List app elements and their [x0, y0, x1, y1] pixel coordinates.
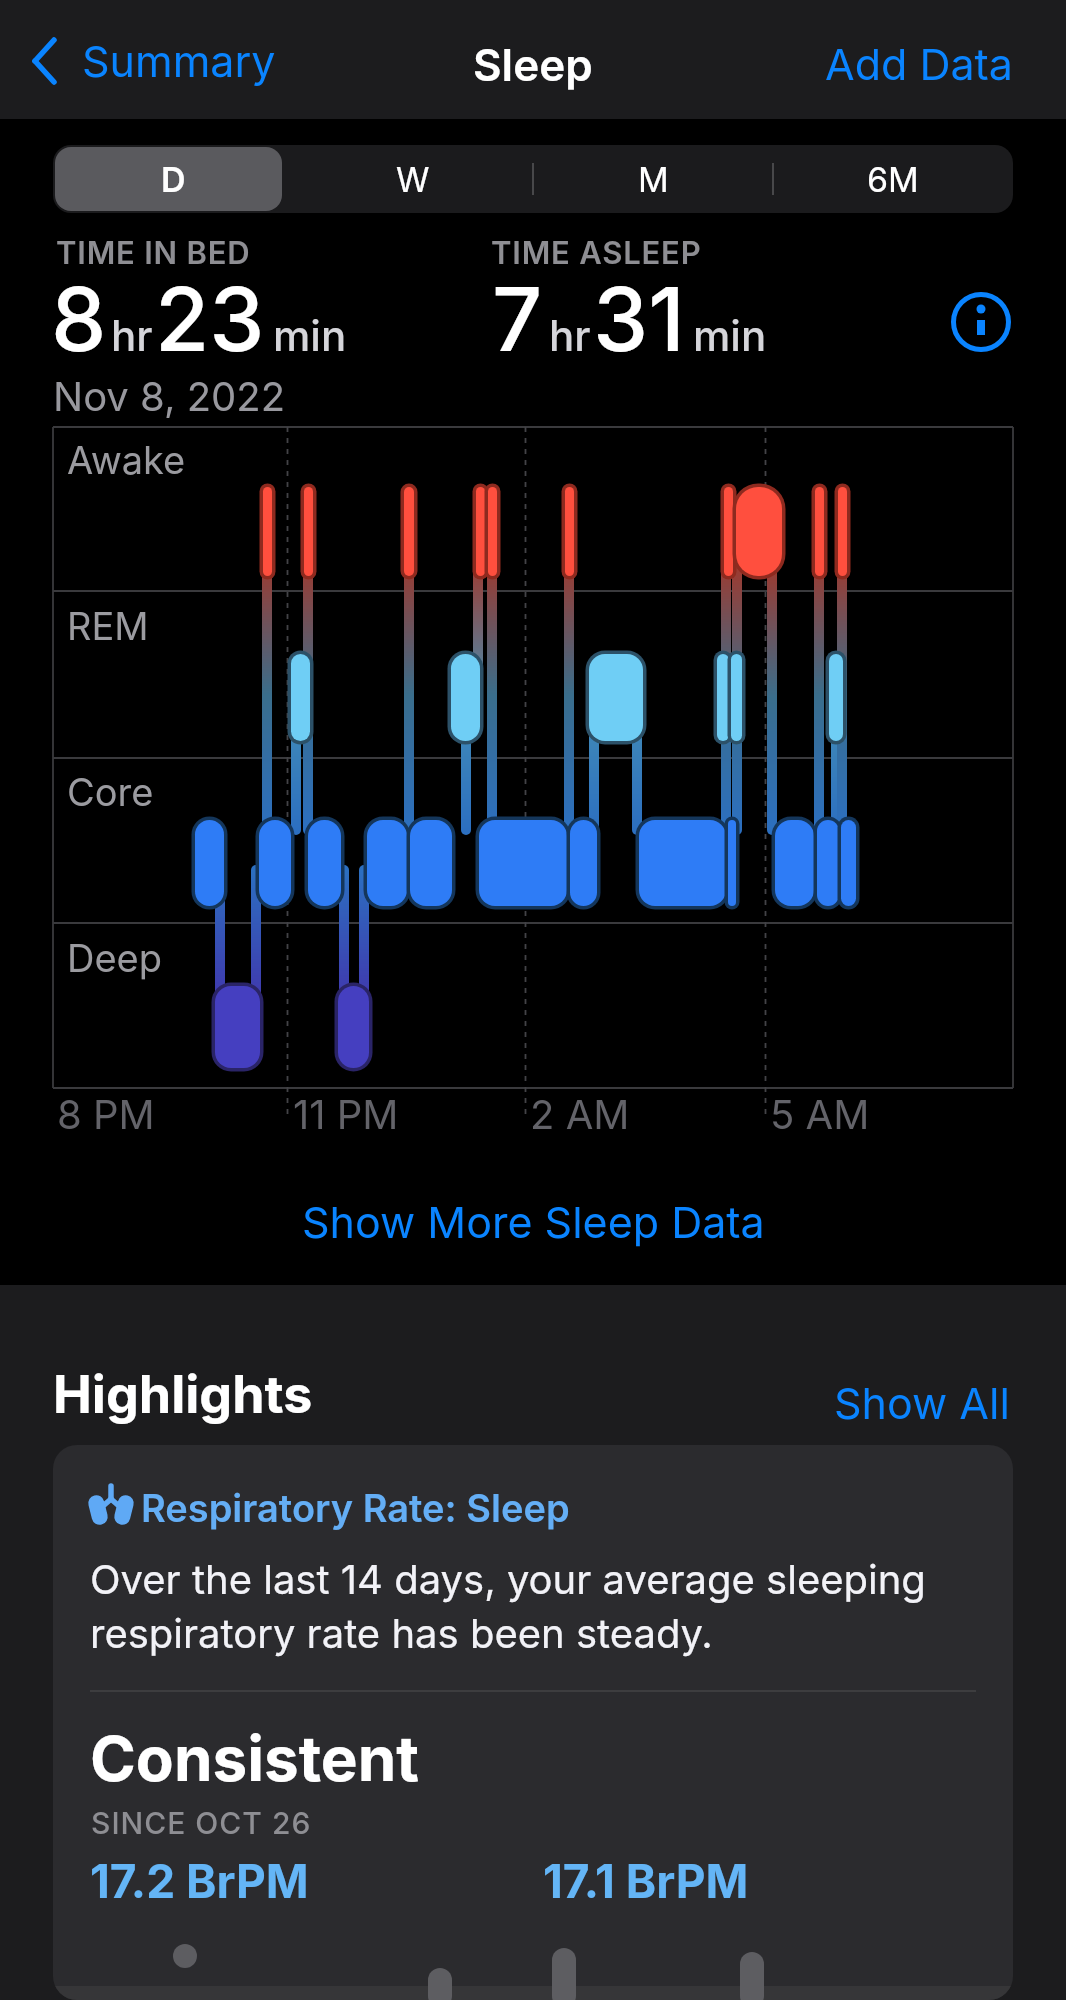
- staticText: 7: [492, 266, 543, 372]
- staticText: Deep: [67, 935, 162, 981]
- button[interactable]: [949, 290, 1013, 354]
- staticText: 23: [155, 266, 265, 372]
- staticText: W: [396, 159, 430, 200]
- staticText: Highlights: [53, 1363, 313, 1426]
- staticText: REM: [67, 603, 149, 649]
- staticText: hr: [549, 310, 591, 361]
- button[interactable]: 6M: [773, 145, 1013, 213]
- staticText: Respiratory Rate: Sleep: [141, 1485, 570, 1531]
- staticText: TIME ASLEEP: [491, 234, 702, 272]
- staticText: Summary: [82, 35, 276, 87]
- button[interactable]: W: [293, 145, 533, 213]
- staticText: Core: [67, 769, 154, 815]
- button[interactable]: Show More Sleep Data: [302, 1196, 765, 1248]
- staticText: 11 PM: [293, 1090, 399, 1138]
- staticText: 31: [593, 266, 685, 372]
- staticText: Consistent: [90, 1721, 420, 1796]
- staticText: 6M: [867, 159, 919, 200]
- staticText: 17.2 BrPM: [90, 1853, 309, 1909]
- staticText: 8 PM: [57, 1090, 155, 1138]
- staticText: TIME IN BED: [56, 234, 251, 272]
- staticText: min: [273, 310, 347, 361]
- staticText: 17.1 BrPM: [543, 1853, 749, 1909]
- button[interactable]: Show All: [834, 1377, 1010, 1429]
- staticText: hr: [111, 310, 153, 361]
- button[interactable]: Add Data: [825, 38, 1014, 90]
- staticText: 2 AM: [530, 1090, 630, 1138]
- staticText: Sleep: [473, 38, 593, 91]
- staticText: 5 AM: [770, 1090, 870, 1138]
- staticText: D: [161, 159, 186, 200]
- staticText: min: [693, 310, 767, 361]
- button[interactable]: D: [53, 145, 293, 213]
- button[interactable]: Summary: [30, 30, 276, 92]
- staticText: Awake: [67, 437, 186, 483]
- staticText: M: [638, 159, 669, 200]
- button[interactable]: Respiratory Rate: Sleep: [53, 1445, 1013, 2000]
- staticText: Nov 8, 2022: [53, 372, 286, 420]
- staticText: SINCE OCT 26: [91, 1805, 312, 1841]
- staticText: 8: [51, 266, 107, 372]
- button[interactable]: M: [533, 145, 773, 213]
- staticText: Over the last 14 days, your average slee…: [90, 1555, 926, 1658]
